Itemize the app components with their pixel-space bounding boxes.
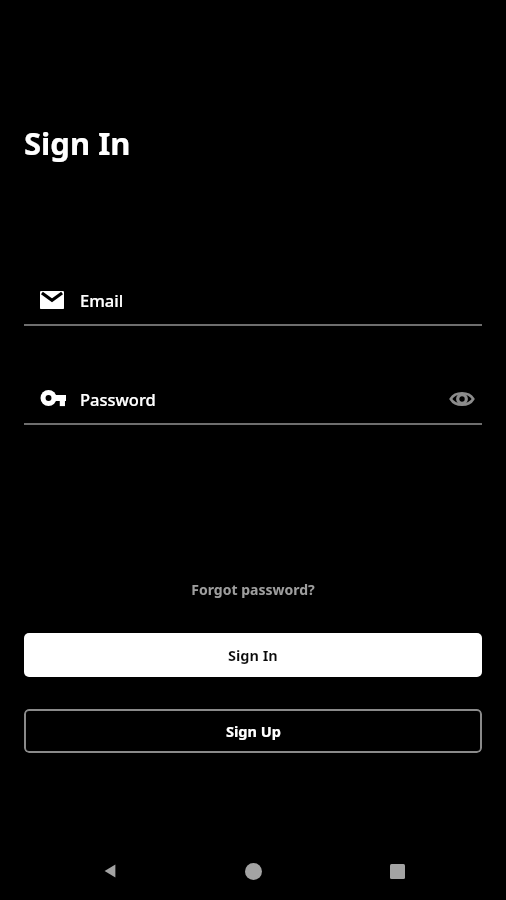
button[interactable]: Show password — [442, 379, 482, 419]
button[interactable]: Password — [24, 375, 482, 425]
button[interactable]: Email — [24, 276, 482, 326]
staticText: Email — [80, 289, 124, 311]
staticText: Sign In — [24, 122, 131, 164]
staticText: Sign Up — [226, 721, 281, 741]
staticText: Sign In — [228, 645, 278, 665]
button[interactable]: Home — [229, 847, 277, 895]
staticText: Password — [80, 388, 156, 410]
button[interactable]: Forgot password? — [183, 576, 323, 603]
button[interactable]: Sign In — [24, 633, 482, 677]
button[interactable]: Recent apps — [373, 847, 421, 895]
staticText: Forgot password? — [191, 580, 315, 599]
button[interactable]: Back — [87, 847, 135, 895]
button[interactable]: Sign Up — [24, 709, 482, 753]
